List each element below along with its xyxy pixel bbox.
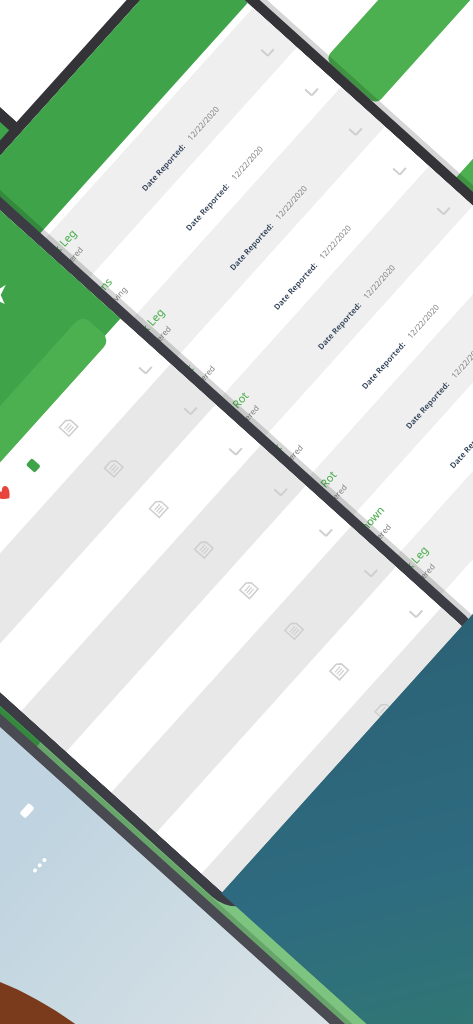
- button[interactable]: RANCHR app promotional screens: [0, 0, 473, 1024]
